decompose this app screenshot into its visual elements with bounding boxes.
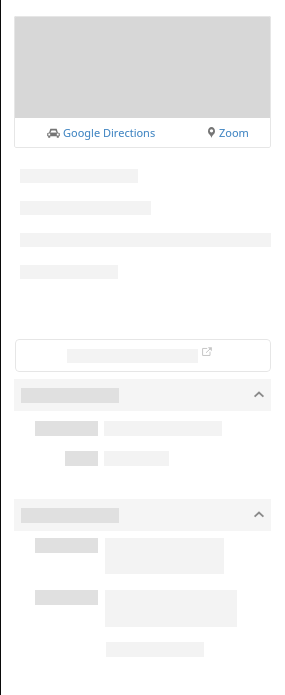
staticText: Google Directions	[63, 125, 156, 140]
other: Open link	[202, 347, 212, 356]
staticText: Zoom	[219, 125, 249, 140]
button[interactable]: Google Directions	[14, 118, 175, 147]
button[interactable]: Zoom	[175, 118, 271, 147]
other: Collapse section	[254, 511, 264, 518]
button[interactable]: Collapse section	[14, 379, 271, 411]
other: Collapse section	[254, 391, 264, 398]
button[interactable]: Open link	[15, 339, 271, 372]
button[interactable]: Collapse section	[14, 499, 271, 531]
